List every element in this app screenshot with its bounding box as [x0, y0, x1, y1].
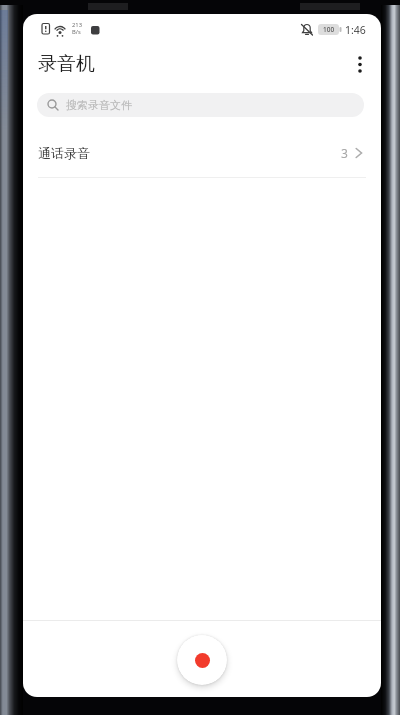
button[interactable]: [177, 635, 227, 685]
button[interactable]: [348, 50, 372, 78]
staticText: 3: [341, 145, 348, 161]
staticText: 1:46: [345, 23, 366, 37]
button[interactable]: 通话录音: [38, 134, 363, 172]
button[interactable]: 搜索录音文件: [37, 93, 364, 117]
staticText: 录音机: [38, 52, 95, 76]
staticText: 搜索录音文件: [66, 98, 132, 112]
staticText: 213 B/s: [72, 21, 82, 36]
staticText: 100: [323, 25, 335, 34]
staticText: 通话录音: [38, 145, 90, 161]
